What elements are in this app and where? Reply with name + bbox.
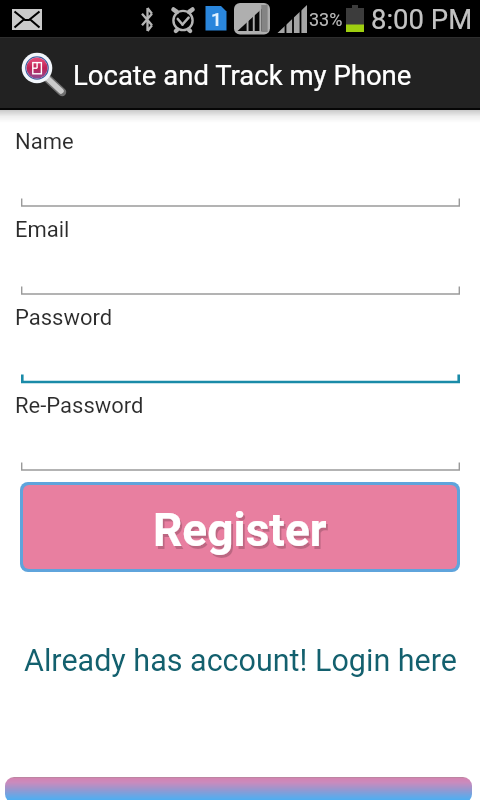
staticText: 8:00 PM (371, 3, 473, 35)
button[interactable]: Email (0, 211, 480, 298)
button[interactable]: Password (0, 299, 480, 386)
staticText: Name (15, 129, 74, 155)
staticText: Password (15, 305, 113, 331)
staticText: Register (153, 503, 327, 557)
staticText: 33% (309, 9, 343, 30)
button[interactable]: Register (23, 485, 457, 569)
staticText: Locate and Track my Phone (73, 59, 412, 91)
staticText: Email (15, 217, 70, 243)
button[interactable]: Already has account! Login here (0, 632, 480, 690)
staticText: Register (155, 506, 329, 560)
staticText: Already has account! Login here (24, 643, 457, 679)
button[interactable] (5, 777, 472, 800)
button[interactable]: Name (0, 123, 480, 210)
staticText: 1 (211, 8, 222, 30)
button[interactable]: Locate and Track my Phone app icon (0, 38, 72, 109)
button[interactable]: Re-Password (0, 387, 480, 474)
staticText: Re-Password (15, 393, 144, 419)
